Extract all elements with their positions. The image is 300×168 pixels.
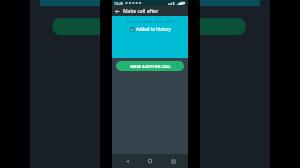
staticText: Make call after <box>123 8 159 15</box>
staticText: Added to history <box>136 26 171 32</box>
button[interactable]: Back <box>122 156 132 166</box>
staticText: 13:20 <box>114 1 123 6</box>
button[interactable]: MAKE ANOTHER CALL <box>116 61 184 71</box>
staticText: MAKE ANOTHER CALL <box>130 64 171 69</box>
button[interactable]: Home <box>145 156 155 166</box>
button[interactable]: Navigate back <box>112 6 122 16</box>
staticText: You can make a call to +9111 <box>126 19 175 24</box>
button[interactable]: Recent apps <box>168 156 178 166</box>
